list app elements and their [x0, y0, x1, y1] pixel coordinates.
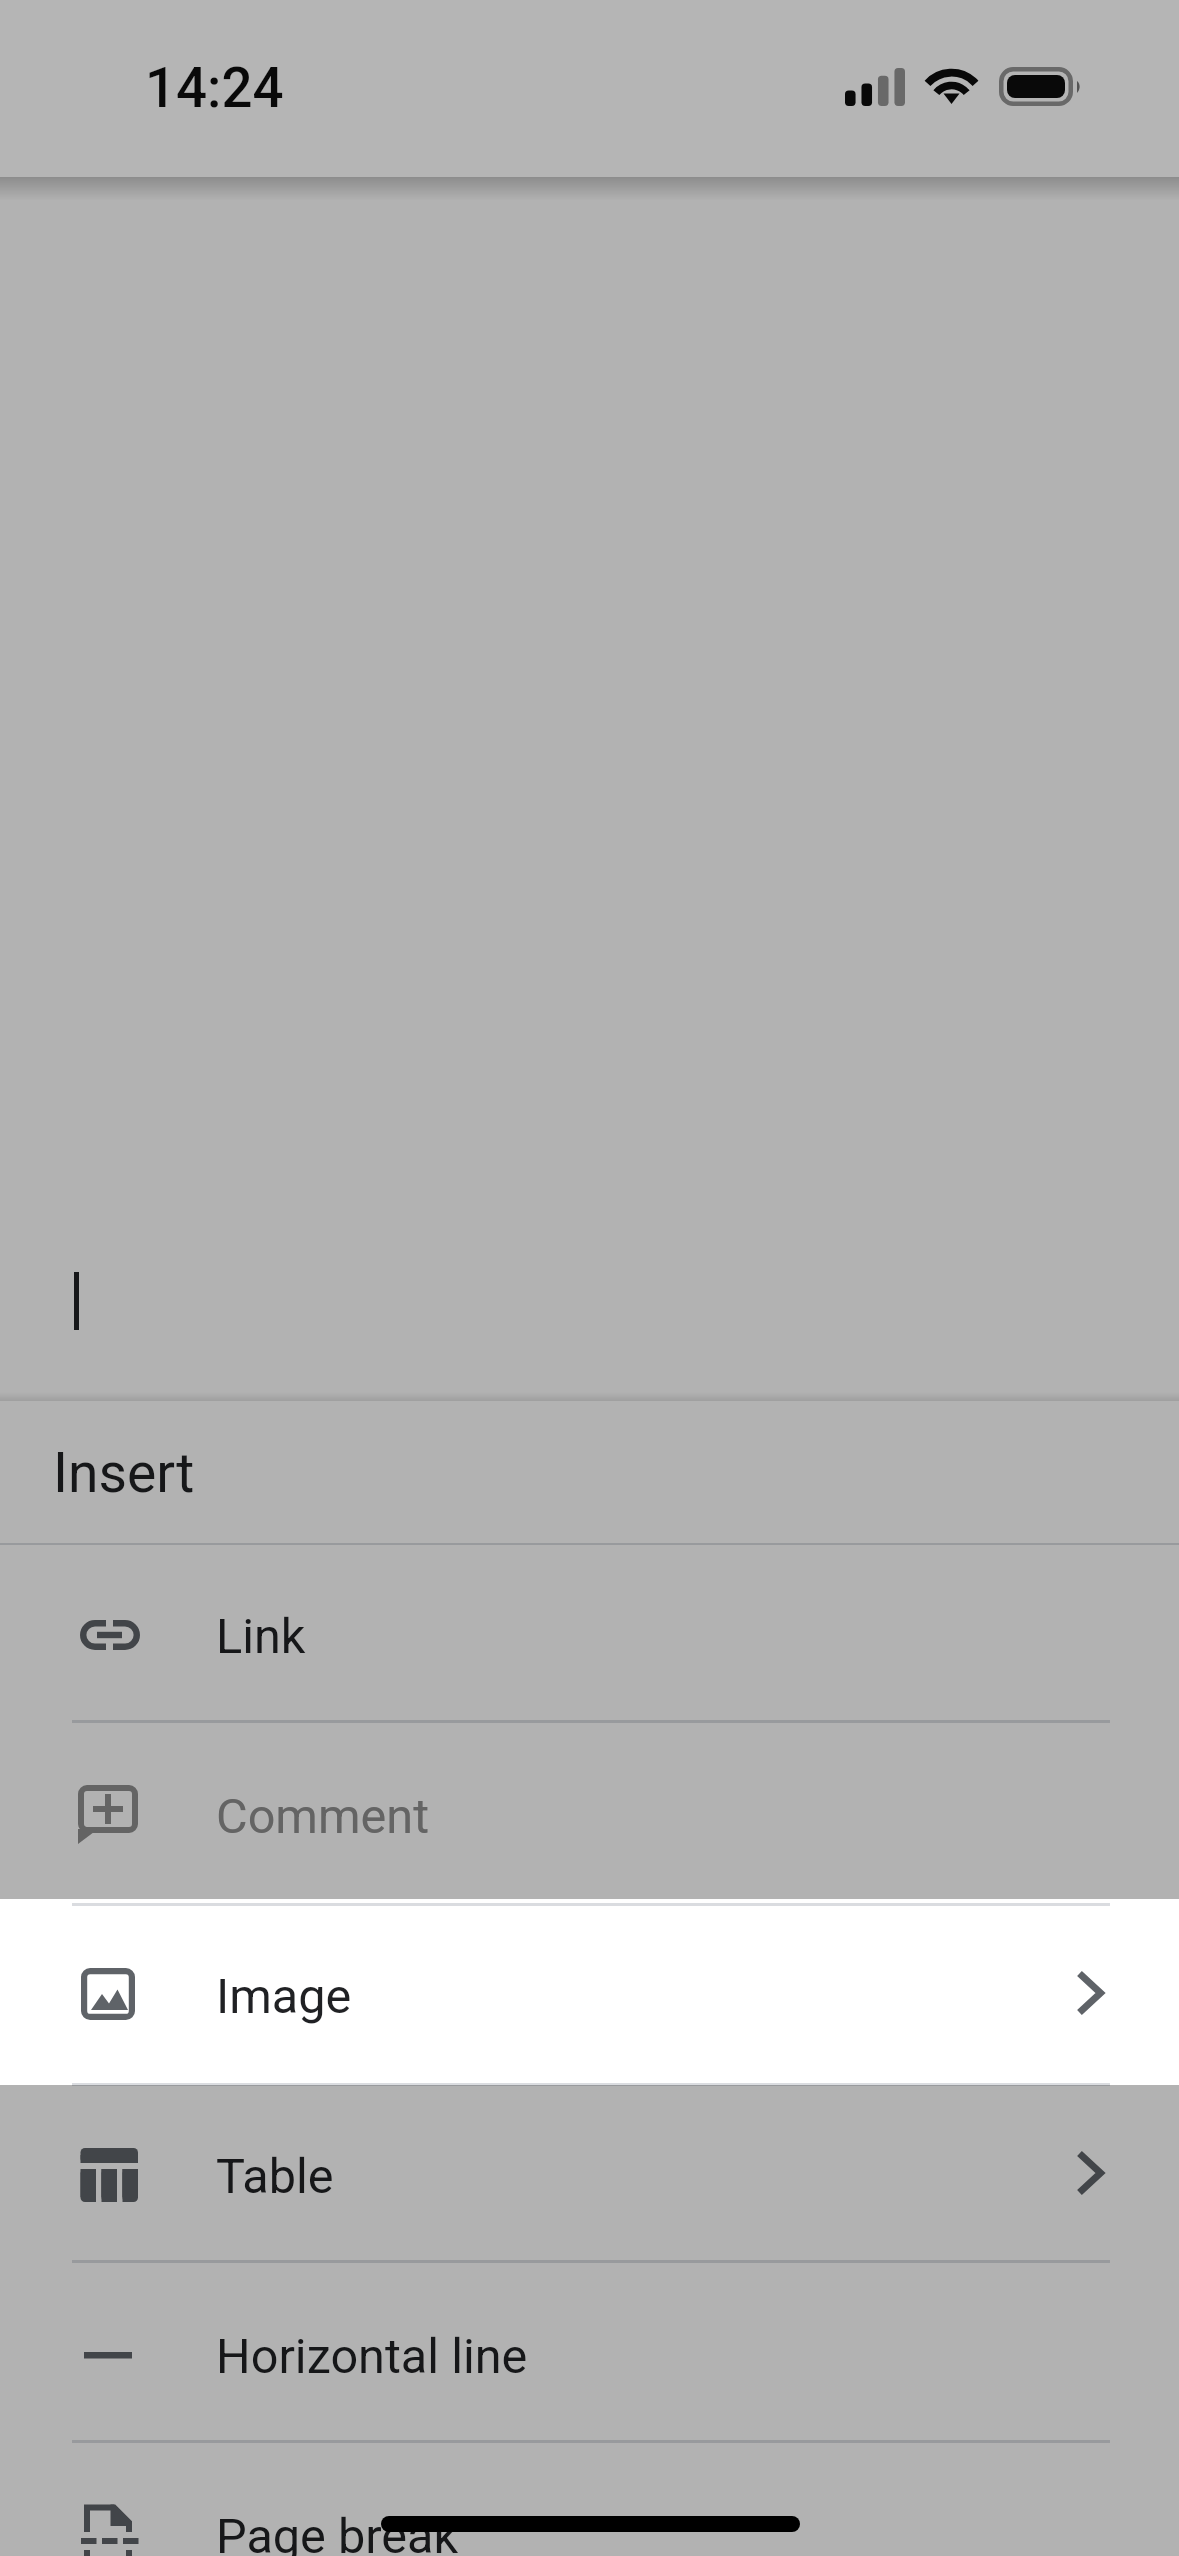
other: Battery full — [998, 67, 1082, 106]
other: Open Image options — [1076, 1969, 1104, 2017]
button[interactable]: Page break — [0, 2443, 1179, 2556]
button[interactable]: Horizontal line — [0, 2263, 1179, 2443]
staticText: Insert — [53, 1441, 195, 1506]
staticText: Page break — [216, 2508, 459, 2556]
button[interactable]: Table — [0, 2083, 1179, 2263]
staticText: Table — [216, 2148, 334, 2205]
other: Open Table options — [1076, 2149, 1104, 2197]
button[interactable]: Link — [0, 1543, 1179, 1723]
button[interactable]: Image — [0, 1903, 1179, 2083]
staticText: Image — [216, 1968, 352, 2025]
other: Wi-Fi connected — [926, 66, 978, 106]
button[interactable]: Comment — [0, 1723, 1179, 1903]
other: Mobile signal strength — [845, 68, 905, 106]
staticText: Link — [216, 1608, 306, 1665]
staticText: 14:24 — [145, 56, 284, 120]
staticText: Horizontal line — [216, 2328, 528, 2385]
staticText: Comment — [216, 1788, 430, 1845]
